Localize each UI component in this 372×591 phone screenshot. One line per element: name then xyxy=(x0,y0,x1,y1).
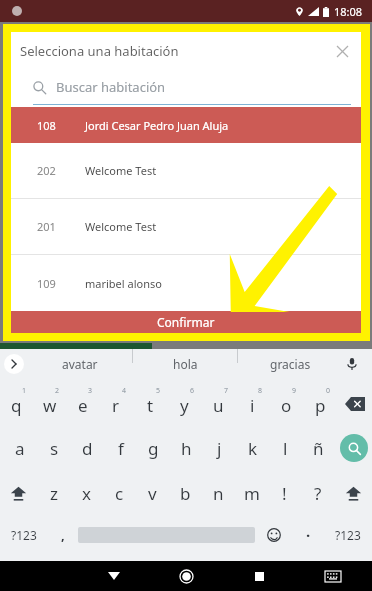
staticText: n xyxy=(213,482,224,505)
button[interactable]: d xyxy=(71,425,104,471)
button[interactable]: x xyxy=(70,471,103,515)
staticText: p xyxy=(315,394,326,417)
staticText: Welcome Test xyxy=(85,219,157,234)
button[interactable]: 2 xyxy=(33,379,66,425)
button[interactable]: Retroceso xyxy=(337,379,372,425)
staticText: Confirmar xyxy=(157,314,215,330)
staticText: x xyxy=(82,482,91,505)
button[interactable]: 202 xyxy=(11,143,361,199)
button[interactable]: Mayúsculas xyxy=(0,471,37,515)
staticText: y xyxy=(180,394,189,417)
button[interactable]: 201 xyxy=(11,199,361,255)
button[interactable]: Buscar xyxy=(335,425,372,471)
button[interactable]: k xyxy=(236,425,269,471)
button[interactable]: Teclado xyxy=(309,561,356,591)
button[interactable]: avatar xyxy=(28,349,132,379)
button[interactable]: Recientes xyxy=(236,561,283,591)
button[interactable]: 0 xyxy=(303,379,337,425)
staticText: k xyxy=(248,437,258,460)
button[interactable]: Más sugerencias xyxy=(4,354,24,374)
staticText: 109 xyxy=(37,276,56,291)
staticText: ? xyxy=(314,482,322,505)
button[interactable]: ?123 xyxy=(0,515,47,555)
staticText: ! xyxy=(282,482,287,505)
staticText: 108 xyxy=(37,118,56,133)
button[interactable]: g xyxy=(137,425,170,471)
staticText: Buscar habitación xyxy=(56,78,166,96)
staticText: j xyxy=(217,437,222,460)
button[interactable]: z xyxy=(37,471,70,515)
staticText: s xyxy=(50,437,59,460)
staticText: 5 xyxy=(156,386,161,396)
button[interactable]: ñ xyxy=(302,425,335,471)
button[interactable]: ! xyxy=(268,471,301,515)
button[interactable]: · xyxy=(293,515,324,555)
staticText: 1 xyxy=(22,386,27,396)
button[interactable]: 3 xyxy=(66,379,99,425)
button[interactable]: , xyxy=(47,515,78,555)
button[interactable]: Dictado por voz xyxy=(340,352,364,376)
staticText: 9 xyxy=(292,386,297,396)
staticText: h xyxy=(181,437,192,460)
button[interactable]: f xyxy=(104,425,137,471)
staticText: 0 xyxy=(326,386,331,396)
button[interactable]: c xyxy=(103,471,136,515)
button[interactable]: Atrás xyxy=(90,561,137,591)
button[interactable]: gracias xyxy=(238,349,342,379)
staticText: ?123 xyxy=(335,527,361,543)
button[interactable]: 6 xyxy=(167,379,201,425)
button[interactable]: a xyxy=(3,425,37,471)
staticText: ñ xyxy=(313,437,324,460)
button[interactable]: h xyxy=(170,425,203,471)
staticText: m xyxy=(244,482,260,505)
staticText: u xyxy=(213,394,224,417)
staticText: Selecciona una habitación xyxy=(20,42,179,60)
staticText: 201 xyxy=(37,219,56,234)
staticText: 7 xyxy=(224,386,229,396)
staticText: · xyxy=(306,525,311,545)
staticText: q xyxy=(11,394,22,417)
button[interactable]: ? xyxy=(301,471,334,515)
staticText: f xyxy=(118,437,124,460)
staticText: , xyxy=(61,526,65,544)
button[interactable]: s xyxy=(37,425,71,471)
button[interactable]: Cerrar xyxy=(331,40,353,62)
staticText: 3 xyxy=(88,386,93,396)
staticText: r xyxy=(112,394,120,417)
staticText: e xyxy=(78,394,88,417)
button[interactable]: 108 xyxy=(11,107,361,143)
staticText: 18:08 xyxy=(334,4,363,19)
button[interactable]: 4 xyxy=(99,379,133,425)
staticText: t xyxy=(147,394,154,417)
button[interactable]: j xyxy=(203,425,236,471)
button[interactable]: v xyxy=(136,471,169,515)
button[interactable]: 9 xyxy=(269,379,303,425)
staticText: a xyxy=(15,437,25,460)
button[interactable]: hola xyxy=(133,349,237,379)
button[interactable]: Emoji xyxy=(255,515,293,555)
staticText: Welcome Test xyxy=(85,163,157,178)
button[interactable]: 109 xyxy=(11,255,361,311)
button[interactable]: Buscar habitación xyxy=(11,69,361,105)
button[interactable]: 8 xyxy=(235,379,269,425)
staticText: z xyxy=(50,482,58,505)
button[interactable]: b xyxy=(169,471,202,515)
button[interactable]: Confirmar xyxy=(11,311,361,333)
button[interactable]: 1 xyxy=(0,379,33,425)
staticText: gracias xyxy=(270,356,311,372)
staticText: Jordi Cesar Pedro Juan Aluja xyxy=(85,118,229,133)
staticText: 8 xyxy=(258,386,263,396)
staticText: maribel alonso xyxy=(85,276,162,291)
staticText: 2 xyxy=(55,386,60,396)
button[interactable]: l xyxy=(269,425,302,471)
button[interactable]: m xyxy=(235,471,268,515)
button[interactable]: 5 xyxy=(133,379,167,425)
button[interactable]: Mayúsculas xyxy=(334,471,372,515)
button[interactable]: ?123 xyxy=(324,515,372,555)
button[interactable]: n xyxy=(202,471,235,515)
staticText: o xyxy=(281,394,292,417)
staticText: c xyxy=(115,482,124,505)
button[interactable]: Inicio xyxy=(163,561,210,591)
button[interactable]: 7 xyxy=(201,379,235,425)
